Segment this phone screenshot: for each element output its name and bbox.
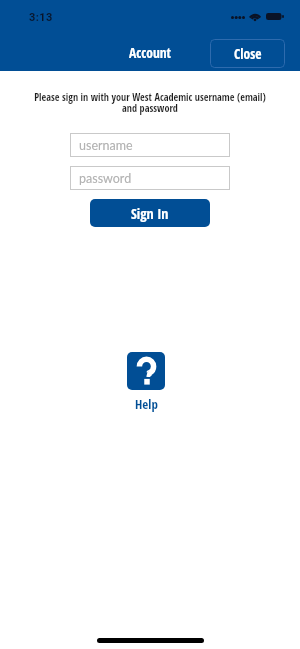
other: Help bbox=[127, 352, 165, 390]
staticText: password bbox=[79, 171, 132, 186]
staticText: Close bbox=[234, 45, 262, 63]
staticText: Help bbox=[135, 395, 158, 413]
button[interactable]: password bbox=[70, 166, 230, 190]
staticText: Please sign in with your West Academic u… bbox=[16, 90, 284, 115]
staticText: Sign In bbox=[131, 204, 169, 223]
staticText: username bbox=[79, 138, 133, 153]
staticText: 3:13 bbox=[29, 11, 53, 24]
button[interactable]: username bbox=[70, 133, 230, 157]
button[interactable]: Sign In bbox=[90, 199, 210, 227]
button[interactable]: Help bbox=[0, 352, 296, 413]
button[interactable]: Close bbox=[210, 39, 285, 68]
staticText: Account bbox=[129, 44, 171, 62]
